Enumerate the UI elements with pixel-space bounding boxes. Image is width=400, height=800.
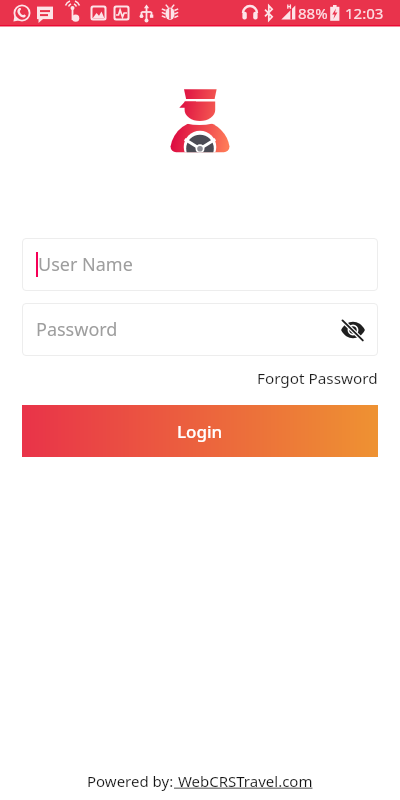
staticText: Forgot Password	[257, 368, 378, 389]
button[interactable]: User Name	[22, 238, 378, 291]
staticText: Login	[177, 420, 223, 443]
button[interactable]: Forgot Password	[256, 366, 379, 391]
staticText: Powered by:	[87, 771, 174, 791]
staticText: User Name	[38, 252, 133, 277]
button[interactable]: Password	[22, 303, 378, 356]
staticText: Password	[36, 317, 118, 342]
other: Show password	[340, 317, 366, 343]
staticText: WebCRSTravel.com	[174, 771, 313, 791]
staticText: 88%	[298, 3, 328, 23]
staticText: 12:03	[345, 3, 384, 23]
button[interactable]: Login	[22, 405, 378, 457]
